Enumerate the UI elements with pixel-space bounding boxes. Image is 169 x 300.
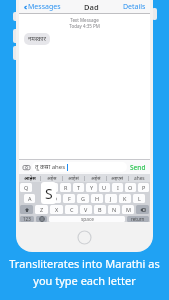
button[interactable]: अहएसं	[107, 174, 128, 182]
button[interactable]: Messages	[22, 2, 62, 12]
staticText: Messages	[28, 2, 61, 12]
staticText: Y	[90, 184, 94, 191]
button[interactable]: Send	[129, 163, 147, 172]
button[interactable]: T	[73, 183, 84, 192]
staticText: C	[70, 206, 74, 213]
staticText: Today 4:35 PM	[19, 23, 150, 29]
button[interactable]: Switch keyboard	[36, 216, 47, 222]
staticText: V	[84, 206, 88, 213]
staticText: Q	[24, 184, 29, 191]
staticText: space	[81, 216, 94, 222]
staticText: नमस्कार	[28, 35, 46, 43]
button[interactable]: D	[50, 194, 61, 203]
staticText: J	[110, 195, 112, 202]
staticText: Dad	[84, 2, 99, 12]
staticText: you type each letter	[33, 273, 136, 288]
button[interactable]: Y	[86, 183, 97, 192]
staticText: I	[117, 184, 119, 191]
staticText: T	[77, 184, 81, 191]
button[interactable]: आहेस	[19, 174, 40, 182]
staticText: अहएसं	[111, 175, 124, 182]
staticText: तू कसा ahes	[35, 163, 66, 171]
button[interactable]: V	[80, 205, 92, 214]
button[interactable]: P	[138, 183, 149, 192]
staticText: K	[123, 195, 127, 202]
staticText: S	[45, 184, 53, 203]
staticText: 123	[23, 216, 31, 222]
button[interactable]: नमस्कार	[24, 33, 50, 45]
button[interactable]: X	[50, 205, 63, 214]
button[interactable]: ahes	[129, 174, 150, 182]
button[interactable]: G	[77, 194, 89, 203]
staticText: Text Message	[19, 17, 150, 23]
button[interactable]: S	[41, 182, 56, 204]
staticText: return	[131, 216, 145, 222]
staticText: H	[95, 195, 100, 202]
staticText: L	[138, 195, 141, 202]
button[interactable]: तू कसा ahes	[32, 162, 127, 172]
staticText: M	[126, 206, 131, 213]
staticText: N	[112, 206, 117, 213]
staticText: A	[28, 195, 32, 202]
button[interactable]: अहेसं	[85, 174, 106, 182]
button[interactable]: अहेस	[41, 174, 62, 182]
button[interactable]: B	[94, 205, 106, 214]
button[interactable]: F	[63, 194, 75, 203]
button[interactable]: O	[125, 183, 136, 192]
staticText: U	[102, 184, 107, 191]
staticText: B	[98, 206, 102, 213]
button[interactable]: J	[105, 194, 117, 203]
staticText: आहेस	[24, 175, 36, 182]
button[interactable]: Home	[77, 230, 92, 245]
button[interactable]: C	[65, 205, 78, 214]
staticText: O	[128, 184, 133, 191]
button[interactable]: R	[60, 183, 71, 192]
staticText: P	[142, 184, 146, 191]
button[interactable]: A	[24, 194, 35, 203]
staticText: D	[53, 195, 58, 202]
button[interactable]: return	[127, 216, 149, 222]
button[interactable]: space	[49, 216, 125, 222]
button[interactable]: 123	[20, 216, 34, 222]
staticText: Transliterates into Marathi as	[9, 256, 160, 271]
staticText: R	[64, 184, 68, 191]
button[interactable]: L	[133, 194, 145, 203]
staticText: अहेस	[47, 175, 57, 182]
button[interactable]: Shift	[20, 205, 33, 214]
button[interactable]: E	[47, 183, 58, 192]
staticText: F	[68, 195, 71, 202]
button[interactable]: Backspace	[136, 205, 149, 214]
staticText: G	[81, 195, 86, 202]
button[interactable]: Z	[35, 205, 48, 214]
staticText: Z	[40, 206, 44, 213]
staticText: E	[51, 184, 55, 191]
button[interactable]: K	[119, 194, 131, 203]
button[interactable]: Details	[122, 2, 147, 12]
button[interactable]: Q	[20, 183, 32, 192]
staticText: X	[55, 206, 59, 213]
button[interactable]: U	[99, 183, 110, 192]
button[interactable]: N	[108, 205, 120, 214]
button[interactable]: I	[112, 183, 123, 192]
staticText: अहेसं	[91, 175, 101, 182]
button[interactable]: आहेसं	[63, 174, 84, 182]
button[interactable]: H	[91, 194, 103, 203]
button[interactable]: M	[122, 205, 134, 214]
staticText: ahes	[134, 175, 145, 182]
staticText: आहेसं	[68, 175, 79, 182]
button[interactable]: Camera	[22, 163, 30, 171]
